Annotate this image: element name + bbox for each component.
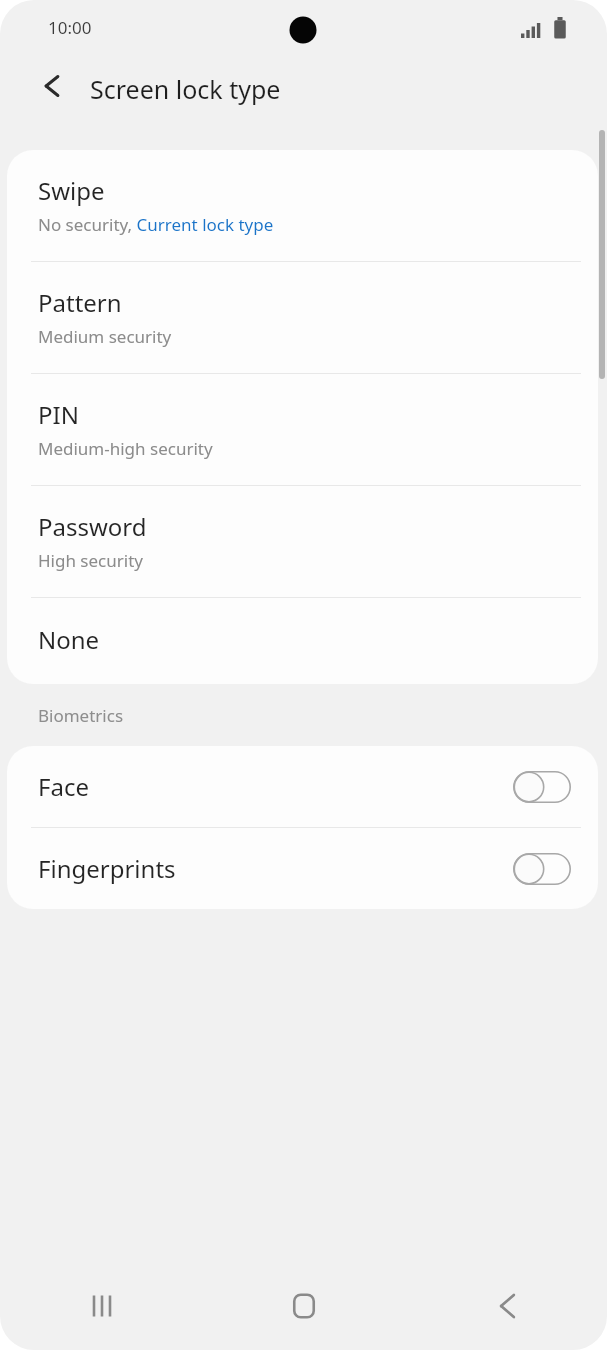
button[interactable]: Back [405,1264,607,1350]
button[interactable]: Fingerprints [7,828,598,909]
button[interactable]: Home [203,1264,405,1350]
button[interactable]: None [7,598,598,684]
button[interactable]: Face [7,746,598,827]
button[interactable]: Back [26,62,74,110]
staticText: Face [38,770,513,803]
staticText: 10:00 [48,16,92,39]
staticText: Pattern [38,286,122,319]
staticText: Medium security [38,325,172,348]
staticText: PIN [38,398,79,431]
staticText: Biometrics [38,704,124,727]
staticText: Medium-high security [38,437,213,460]
button[interactable]: Recent apps [0,1264,203,1350]
staticText: High security [38,549,143,572]
button[interactable]: Swipe [7,150,598,261]
button[interactable]: Toggle [513,771,571,803]
staticText: Fingerprints [38,852,513,885]
staticText: None [38,623,100,656]
button[interactable]: Pattern [7,262,598,373]
button[interactable]: Toggle [513,853,571,885]
staticText: Screen lock type [90,72,281,106]
button[interactable]: Password [7,486,598,597]
staticText: Swipe [38,174,105,207]
button[interactable]: PIN [7,374,598,485]
staticText: No security, Current lock type [38,213,274,236]
staticText: Password [38,510,147,543]
